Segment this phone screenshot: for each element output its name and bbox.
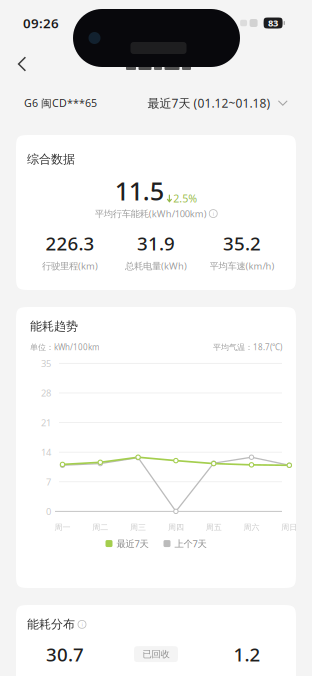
staticText: 平均行车能耗(kWh/100km) bbox=[95, 207, 207, 220]
staticText: 周一 bbox=[54, 522, 70, 532]
button[interactable]: 最近7天 (01.12~01.18) bbox=[148, 95, 288, 111]
staticText: 周五 bbox=[206, 522, 222, 532]
staticText: 能耗趋势 bbox=[30, 319, 78, 334]
staticText: 周三 bbox=[130, 522, 146, 532]
staticText: 周二 bbox=[92, 522, 108, 532]
staticText: 平均车速(km/h) bbox=[209, 260, 274, 272]
staticText: 7 bbox=[46, 476, 51, 488]
staticText: 上个7天 bbox=[174, 537, 206, 550]
staticText: 最近7天 bbox=[116, 537, 148, 550]
staticText: 09:26 bbox=[23, 14, 59, 32]
staticText: 35.2 bbox=[223, 231, 261, 256]
button[interactable]: Back bbox=[5, 47, 39, 81]
staticText: 1.2 bbox=[233, 642, 260, 666]
staticText: 21 bbox=[41, 416, 51, 429]
staticText: 31.9 bbox=[137, 231, 175, 256]
staticText: 2.5% bbox=[173, 191, 197, 205]
staticText: G6 闽CD***65 bbox=[24, 96, 97, 110]
staticText: 周四 bbox=[168, 522, 184, 532]
staticText: 能耗分布 bbox=[27, 617, 75, 632]
staticText: 周六 bbox=[243, 522, 259, 532]
staticText: 综合数据 bbox=[27, 152, 75, 167]
staticText: 83 bbox=[268, 17, 278, 29]
staticText: i bbox=[213, 210, 214, 217]
staticText: 30.7 bbox=[46, 642, 84, 666]
staticText: 行驶里程(km) bbox=[42, 260, 98, 272]
staticText: 35 bbox=[41, 357, 51, 370]
staticText: 总耗电量(kWh) bbox=[125, 260, 187, 272]
staticText: 0 bbox=[46, 505, 51, 518]
staticText: 已回收 bbox=[142, 648, 169, 660]
staticText: 11.5 bbox=[115, 174, 164, 207]
staticText: 平均气温：18.7(°C) bbox=[213, 342, 282, 352]
staticText: 28 bbox=[41, 387, 51, 399]
staticText: 最近7天 (01.12~01.18) bbox=[148, 95, 271, 111]
staticText: 226.3 bbox=[45, 231, 94, 256]
staticText: 单位：kWh/100km bbox=[30, 342, 99, 352]
staticText: 14 bbox=[41, 446, 51, 458]
staticText: 周日 bbox=[281, 522, 297, 532]
